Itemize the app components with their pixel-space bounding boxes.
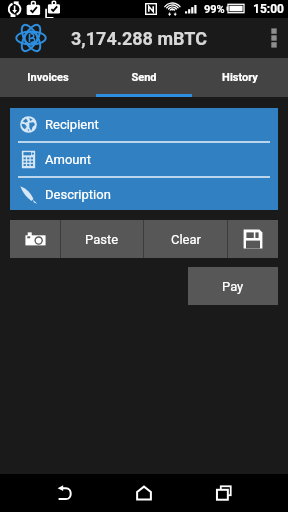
button[interactable]: Invoices — [0, 58, 96, 97]
staticText: Paste — [85, 232, 119, 247]
button[interactable]: Amount — [10, 143, 278, 176]
button[interactable]: Send — [96, 58, 192, 97]
staticText: Invoices — [27, 71, 69, 84]
button[interactable]: Recent apps — [194, 474, 254, 512]
button[interactable]: History — [192, 58, 288, 97]
button[interactable]: Scan QR code with camera — [10, 220, 60, 258]
staticText: 15:00 — [253, 2, 284, 16]
staticText: History — [222, 71, 258, 84]
staticText: Pay — [222, 279, 244, 294]
staticText: Clear — [171, 232, 201, 247]
button[interactable]: Back — [34, 474, 94, 512]
button[interactable]: More options — [258, 18, 288, 58]
button[interactable]: Paste — [61, 220, 143, 258]
button[interactable]: Description — [10, 178, 278, 210]
staticText: Send — [131, 71, 157, 84]
button[interactable]: Recipient — [10, 108, 278, 141]
staticText: Amount — [45, 152, 91, 167]
staticText: 3,174.288 mBTC — [71, 28, 207, 49]
button[interactable]: Save — [228, 220, 278, 258]
button[interactable]: Home — [114, 474, 174, 512]
staticText: Recipient — [45, 117, 99, 132]
staticText: Description — [45, 187, 111, 202]
button[interactable]: Pay — [188, 267, 278, 305]
button[interactable]: Clear — [144, 220, 227, 258]
staticText: 99% — [204, 3, 225, 16]
